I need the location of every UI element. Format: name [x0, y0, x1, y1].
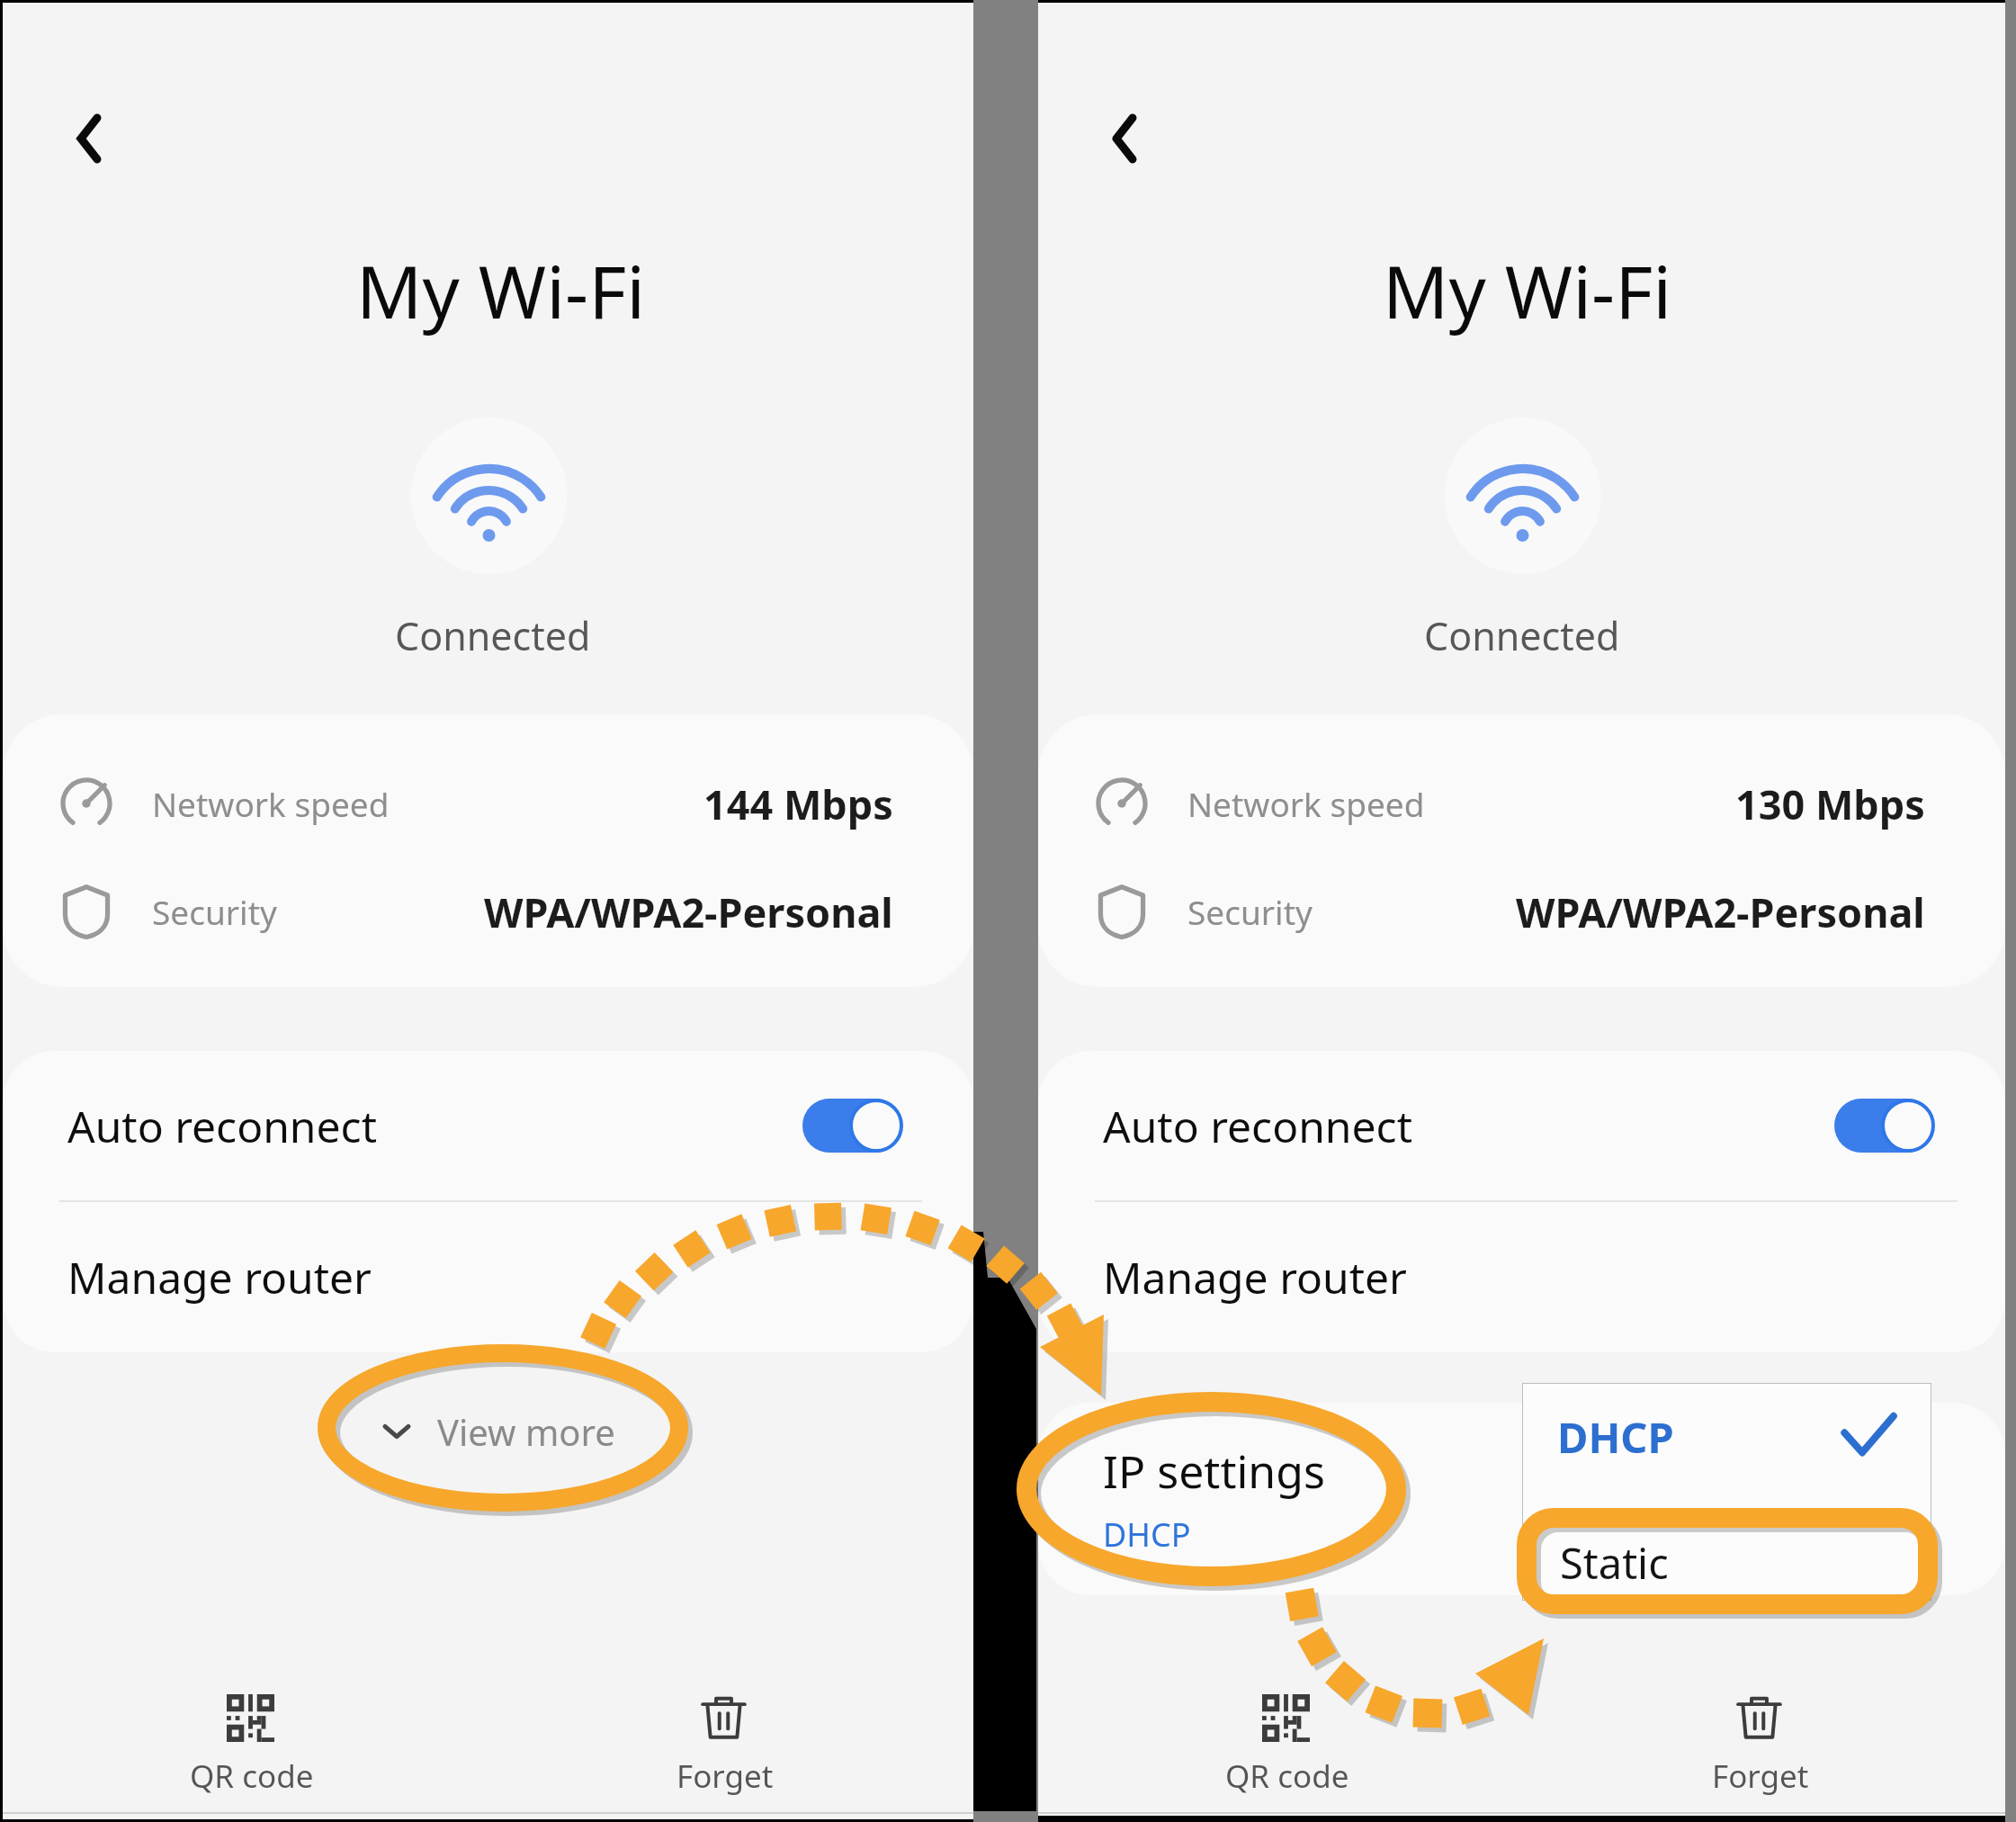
staticText: Forget: [676, 1755, 774, 1798]
staticText: Static: [1560, 1534, 1669, 1592]
staticText: Manage router: [1103, 1248, 1407, 1306]
staticText: 144 Mbps: [703, 776, 893, 831]
staticText: QR code: [190, 1755, 314, 1798]
staticText: Security: [1187, 889, 1313, 934]
staticText: QR code: [1225, 1755, 1349, 1798]
button[interactable]: QR code: [1162, 1661, 1414, 1814]
button[interactable]: Auto reconnect: [3, 1051, 973, 1200]
staticText: WPA/WPA2-Personal: [1516, 884, 1925, 939]
button[interactable]: Back: [53, 93, 125, 165]
staticText: My Wi-Fi: [1383, 240, 1672, 339]
button[interactable]: [802, 1099, 903, 1153]
staticText: Auto reconnect: [67, 1097, 377, 1155]
staticText: Manage router: [67, 1248, 372, 1306]
button[interactable]: Manage router: [1038, 1202, 2005, 1352]
staticText: DHCP: [1103, 1512, 1191, 1557]
button[interactable]: [1834, 1099, 1935, 1153]
button[interactable]: DHCP: [1523, 1384, 1931, 1490]
staticText: View more: [437, 1407, 615, 1456]
button[interactable]: Back: [1089, 93, 1160, 165]
button[interactable]: View more: [14, 1388, 985, 1475]
staticText: My Wi-Fi: [356, 240, 646, 339]
button[interactable]: IP settings: [1038, 1403, 2005, 1595]
button[interactable]: Forget: [600, 1661, 852, 1814]
staticText: Network speed: [152, 781, 390, 826]
button[interactable]: QR code: [127, 1661, 379, 1814]
staticText: 130 Mbps: [1735, 776, 1925, 831]
staticText: WPA/WPA2-Personal: [484, 884, 893, 939]
staticText: DHCP: [1557, 1408, 1674, 1466]
staticText: Auto reconnect: [1103, 1097, 1412, 1155]
button[interactable]: Auto reconnect: [1038, 1051, 2005, 1200]
button[interactable]: Manage router: [3, 1202, 973, 1352]
staticText: Connected: [395, 609, 591, 662]
staticText: IP settings: [1103, 1441, 1325, 1502]
staticText: Connected: [1424, 609, 1620, 662]
button[interactable]: Forget: [1635, 1661, 1887, 1814]
button[interactable]: Static: [1523, 1526, 1931, 1600]
staticText: Forget: [1712, 1755, 1809, 1798]
staticText: Network speed: [1187, 781, 1425, 826]
staticText: Security: [152, 889, 277, 934]
